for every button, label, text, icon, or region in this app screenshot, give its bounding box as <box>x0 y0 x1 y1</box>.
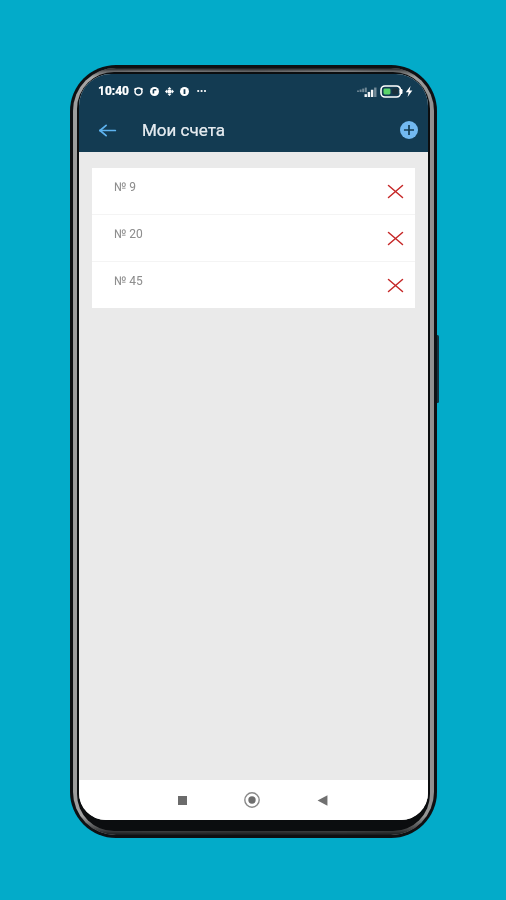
button[interactable]: № 20 <box>92 215 415 261</box>
button[interactable]: Delete <box>382 225 408 251</box>
button[interactable]: № 9 <box>92 168 415 214</box>
button[interactable]: Back <box>287 780 357 820</box>
button[interactable]: Delete <box>382 178 408 204</box>
button[interactable]: Back <box>95 118 120 143</box>
button[interactable]: Recent apps <box>147 780 217 820</box>
staticText: 10:40 <box>98 84 129 98</box>
staticText: Мои счета <box>142 120 225 140</box>
staticText: № 9 <box>114 180 137 194</box>
button[interactable]: № 45 <box>92 262 415 308</box>
button[interactable]: Home <box>217 780 287 820</box>
staticText: № 45 <box>114 274 143 288</box>
button[interactable]: Add account <box>400 121 418 139</box>
staticText: № 20 <box>114 227 143 241</box>
button[interactable]: Delete <box>382 272 408 298</box>
